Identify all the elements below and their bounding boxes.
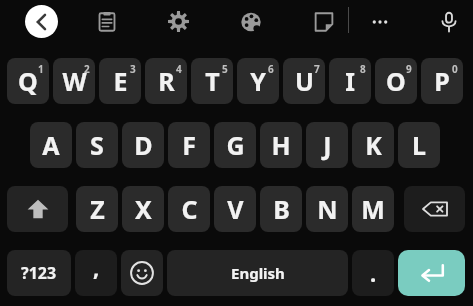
staticText: 7 (314, 62, 320, 76)
staticText: P (434, 64, 450, 98)
staticText: J (323, 128, 332, 162)
staticText: G (226, 128, 245, 162)
staticText: 4 (176, 62, 182, 76)
button[interactable]: K (352, 122, 394, 168)
staticText: 8 (360, 62, 366, 76)
staticText: I (345, 64, 355, 98)
staticText: V (227, 192, 244, 226)
staticText: D (134, 128, 153, 162)
button[interactable]: A (30, 122, 72, 168)
button[interactable]: U (283, 58, 325, 104)
button[interactable]: Y (237, 58, 279, 104)
button[interactable]: N (306, 186, 348, 232)
button[interactable]: Back (25, 5, 58, 38)
staticText: C (181, 192, 198, 226)
button[interactable]: T (191, 58, 233, 104)
staticText: Q (18, 64, 38, 98)
button[interactable]: E (99, 58, 141, 104)
staticText: T (205, 64, 220, 98)
staticText: O (386, 64, 406, 98)
button[interactable]: M (352, 186, 394, 232)
button[interactable]: F (168, 122, 210, 168)
staticText: W (62, 64, 87, 98)
staticText: 6 (268, 62, 274, 76)
button[interactable]: P (421, 58, 463, 104)
staticText: F (182, 128, 196, 162)
staticText: B (273, 192, 290, 226)
button[interactable]: Stickers (312, 10, 336, 34)
staticText: 5 (222, 62, 228, 76)
staticText: 9 (406, 62, 412, 76)
button[interactable]: . (352, 250, 394, 296)
staticText: R (158, 64, 175, 98)
button[interactable]: Clipboard (95, 10, 119, 34)
button[interactable]: Z (76, 186, 118, 232)
button[interactable]: Settings (166, 9, 190, 33)
button[interactable]: ?123 (7, 250, 71, 296)
staticText: Z (90, 192, 105, 226)
button[interactable]: L (398, 122, 440, 168)
button[interactable]: J (306, 122, 348, 168)
button[interactable]: Q (7, 58, 49, 104)
button[interactable]: V (214, 186, 256, 232)
button[interactable]: W (53, 58, 95, 104)
staticText: . (370, 258, 377, 288)
staticText: H (271, 128, 291, 162)
staticText: 1 (38, 62, 44, 76)
button[interactable]: R (145, 58, 187, 104)
button[interactable]: C (168, 186, 210, 232)
button[interactable]: X (122, 186, 164, 232)
staticText: N (317, 192, 338, 226)
staticText: K (365, 128, 382, 162)
button[interactable]: English (167, 250, 348, 296)
button[interactable]: O (375, 58, 417, 104)
button[interactable]: B (260, 186, 302, 232)
staticText: A (42, 128, 60, 162)
button[interactable]: Voice input (437, 10, 461, 34)
staticText: X (135, 192, 152, 226)
button[interactable]: Backspace (404, 186, 465, 232)
button[interactable]: , (75, 250, 117, 296)
button[interactable]: Enter (398, 250, 465, 296)
staticText: M (361, 192, 385, 226)
staticText: 3 (130, 62, 136, 76)
button[interactable]: S (76, 122, 118, 168)
button[interactable]: Shift (7, 186, 68, 232)
staticText: E (113, 64, 128, 98)
button[interactable]: H (260, 122, 302, 168)
staticText: 2 (84, 62, 90, 76)
staticText: S (90, 128, 104, 162)
staticText: , (93, 252, 100, 282)
staticText: 0 (452, 62, 458, 76)
staticText: Y (250, 64, 266, 98)
button[interactable]: More options (368, 10, 392, 34)
button[interactable]: Emoji (121, 250, 163, 296)
staticText: ?123 (21, 262, 57, 284)
button[interactable]: G (214, 122, 256, 168)
staticText: L (412, 128, 426, 162)
staticText: English (231, 263, 285, 283)
button[interactable]: Theme (239, 10, 263, 34)
staticText: U (295, 64, 314, 98)
button[interactable]: I (329, 58, 371, 104)
button[interactable]: D (122, 122, 164, 168)
